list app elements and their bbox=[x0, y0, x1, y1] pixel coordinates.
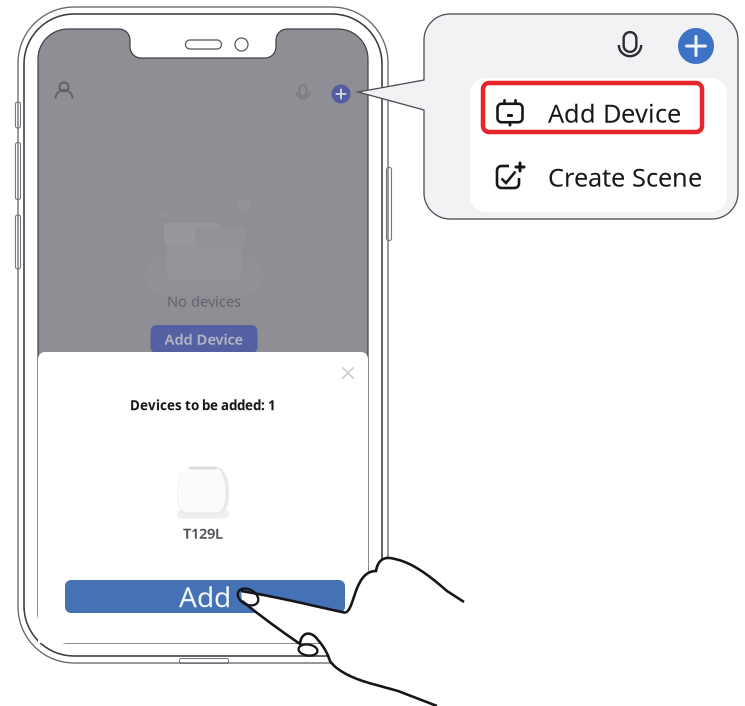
staticText: T129L bbox=[183, 523, 223, 543]
staticText: Add Device bbox=[164, 329, 243, 349]
staticText: Create Scene bbox=[548, 160, 702, 194]
button[interactable]: Close bbox=[334, 359, 362, 387]
button[interactable]: Add Device bbox=[470, 81, 727, 145]
staticText: Add bbox=[179, 578, 231, 615]
staticText: Devices to be added: 1 bbox=[130, 396, 276, 414]
button[interactable]: Add bbox=[678, 28, 714, 64]
button[interactable]: Add bbox=[331, 84, 350, 103]
staticText: No devices bbox=[167, 291, 241, 311]
button[interactable]: Add bbox=[65, 580, 345, 613]
staticText: Add Device bbox=[548, 96, 681, 130]
button[interactable]: Create Scene bbox=[470, 145, 727, 209]
